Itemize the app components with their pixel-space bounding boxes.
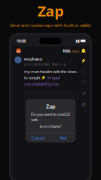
staticText: ⚡ — [81, 58, 86, 63]
button[interactable]: Cancel — [25, 133, 50, 142]
staticText: 🦊 — [16, 49, 21, 53]
staticText: Cancel — [31, 135, 44, 140]
button[interactable]: More — [80, 101, 86, 107]
staticText: 🗨 — [81, 80, 86, 85]
button[interactable]: Yes! — [51, 133, 76, 142]
button[interactable]: Notifications — [79, 47, 86, 55]
staticText: snort.build/e/Oj.mov — [24, 81, 59, 87]
staticText: ↗ — [81, 90, 85, 96]
staticText: sats — [71, 48, 79, 53]
staticText: Zap — [37, 1, 63, 21]
staticText: Do you want to send 22 sats — [31, 111, 70, 122]
button[interactable]: Share — [80, 90, 86, 96]
button[interactable]: Profile — [14, 47, 22, 55]
staticText: 🔔 — [80, 49, 85, 53]
button[interactable]: Zap — [80, 57, 86, 63]
staticText: mcshane — [24, 56, 42, 62]
staticText: 10:08 — [16, 38, 25, 43]
button[interactable]: Comment — [80, 79, 86, 85]
staticText: ♡ — [81, 68, 86, 74]
staticText: Yes! — [60, 135, 67, 140]
staticText: join us at fountain, Nov 13 🎙 — [24, 63, 66, 66]
staticText: ⚡ — [41, 75, 46, 80]
staticText: hi tapuf — [47, 75, 59, 80]
staticText: Zap — [46, 103, 55, 110]
staticText: ks tonight — [24, 75, 40, 80]
staticText: 100k — [62, 48, 70, 53]
staticText: ⊙ — [81, 101, 85, 107]
staticText: my man houdini with the clean- — [24, 69, 77, 74]
staticText: Send and receive zaps with built-in wall… — [10, 23, 91, 28]
staticText: to mcshane? — [39, 124, 61, 129]
button[interactable]: Like — [80, 68, 86, 74]
staticText: ▮▮ — [75, 39, 79, 43]
